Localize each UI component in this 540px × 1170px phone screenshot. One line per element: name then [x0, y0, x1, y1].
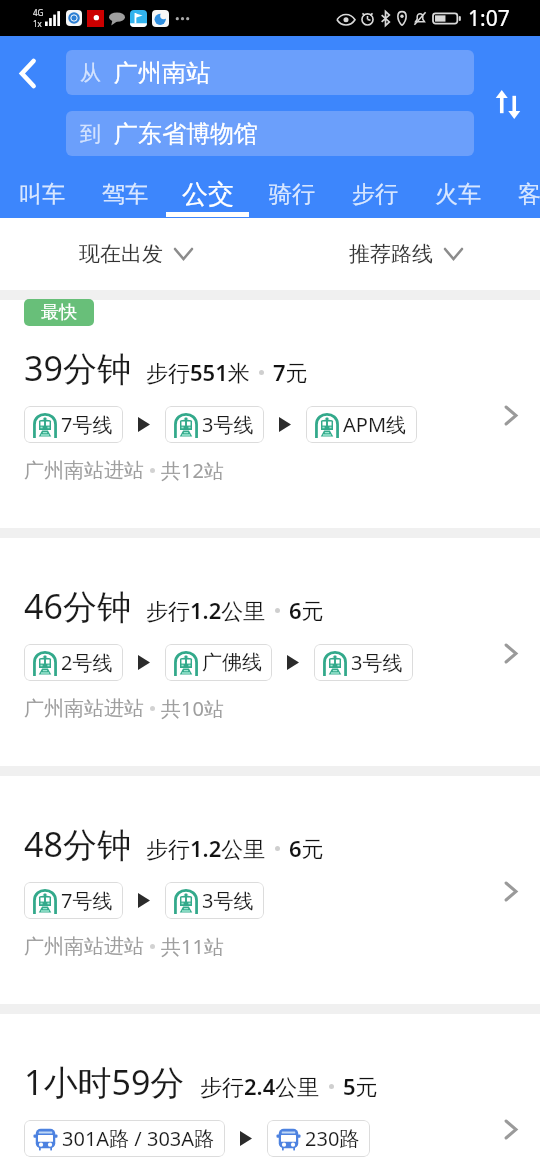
button[interactable]: 1小时59分: [0, 1014, 540, 1170]
button[interactable]: 到: [66, 111, 474, 156]
staticText: 7元: [273, 357, 308, 387]
button[interactable]: Swap origin and destination: [486, 82, 530, 126]
staticText: 共11站: [161, 933, 224, 960]
staticText: 广州南站进站: [24, 696, 144, 721]
staticText: 步行2.4公里: [200, 1071, 320, 1101]
button[interactable]: 推荐路线: [270, 218, 540, 290]
staticText: 客车: [518, 180, 540, 209]
staticText: 步行: [352, 180, 398, 209]
button[interactable]: 301A路 / 303A路: [33, 1120, 215, 1157]
button[interactable]: Back: [6, 51, 50, 95]
button[interactable]: 叫车: [0, 170, 83, 218]
button[interactable]: 骑行: [250, 170, 333, 218]
staticText: 39分钟: [24, 345, 131, 391]
button[interactable]: 广佛线: [174, 644, 262, 681]
staticText: 4G: [33, 7, 44, 18]
staticText: 步行1.2公里: [146, 833, 266, 863]
button[interactable]: 现在出发: [0, 218, 270, 290]
staticText: 48分钟: [24, 821, 131, 867]
button[interactable]: 火车: [416, 170, 499, 218]
staticText: 叫车: [19, 180, 65, 209]
staticText: 5元: [343, 1071, 378, 1101]
staticText: 2号线: [61, 649, 113, 676]
staticText: 步行1.2公里: [146, 595, 266, 625]
staticText: 公交: [182, 178, 234, 211]
staticText: APM线: [343, 411, 407, 438]
staticText: 共10站: [161, 695, 224, 722]
button[interactable]: APM线: [315, 406, 407, 443]
staticText: 3号线: [202, 887, 254, 914]
staticText: 1x: [33, 18, 42, 29]
staticText: 3号线: [202, 411, 254, 438]
button[interactable]: 驾车: [83, 170, 166, 218]
staticText: 广佛线: [202, 650, 262, 675]
button[interactable]: 3号线: [174, 406, 254, 443]
button[interactable]: 230路: [276, 1120, 360, 1157]
button[interactable]: 3号线: [174, 882, 254, 919]
staticText: 广州南站: [114, 58, 210, 88]
staticText: 骑行: [269, 180, 315, 209]
staticText: 共12站: [161, 457, 224, 484]
button[interactable]: 最快: [0, 300, 540, 528]
staticText: 230路: [305, 1125, 360, 1152]
button[interactable]: 46分钟: [0, 538, 540, 766]
button[interactable]: 7号线: [33, 882, 113, 919]
staticText: 步行551米: [146, 357, 250, 387]
staticText: 从: [80, 60, 101, 86]
staticText: 驾车: [102, 180, 148, 209]
button[interactable]: 客车: [499, 170, 540, 218]
staticText: 301A路 / 303A路: [62, 1125, 215, 1152]
staticText: 火车: [435, 180, 481, 209]
button[interactable]: 从: [66, 50, 474, 95]
button[interactable]: Route details: [495, 1113, 527, 1145]
staticText: 到: [80, 121, 101, 147]
staticText: 3号线: [351, 649, 403, 676]
staticText: 6元: [289, 595, 324, 625]
staticText: 现在出发: [79, 241, 163, 267]
staticText: 广州南站进站: [24, 934, 144, 959]
staticText: 推荐路线: [349, 241, 433, 267]
staticText: 46分钟: [24, 583, 131, 629]
staticText: 最快: [41, 301, 77, 324]
button[interactable]: 步行: [333, 170, 416, 218]
staticText: 7号线: [61, 411, 113, 438]
button[interactable]: 公交: [166, 170, 249, 218]
button[interactable]: Route details: [495, 637, 527, 669]
button[interactable]: Route details: [495, 875, 527, 907]
staticText: 1:07: [468, 4, 510, 33]
staticText: 广东省博物馆: [114, 119, 258, 149]
staticText: 6元: [289, 833, 324, 863]
button[interactable]: 2号线: [33, 644, 113, 681]
staticText: 7号线: [61, 887, 113, 914]
button[interactable]: 48分钟: [0, 776, 540, 1004]
staticText: 1小时59分: [24, 1059, 185, 1105]
button[interactable]: 7号线: [33, 406, 113, 443]
button[interactable]: Route details: [495, 399, 527, 431]
button[interactable]: 3号线: [323, 644, 403, 681]
staticText: 广州南站进站: [24, 458, 144, 483]
